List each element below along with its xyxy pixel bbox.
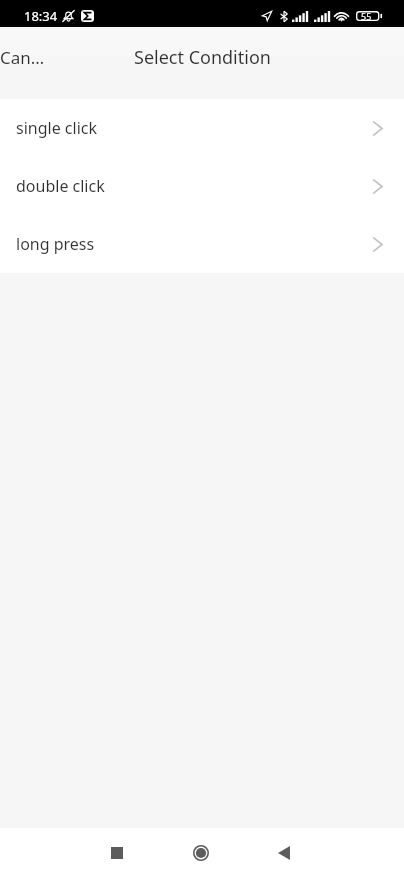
button[interactable]: Home <box>177 829 225 877</box>
staticText: 18:34 <box>24 7 58 25</box>
staticText: 55 <box>361 10 372 20</box>
staticText: single click <box>16 117 97 139</box>
staticText: Can… <box>0 46 45 69</box>
button[interactable]: Can… <box>0 35 56 79</box>
button[interactable]: Recents <box>93 829 141 877</box>
staticText: long press <box>16 233 95 255</box>
staticText: Select Condition <box>134 45 271 70</box>
button[interactable]: double click <box>0 157 404 215</box>
button[interactable]: Back <box>260 829 308 877</box>
button[interactable]: long press <box>0 215 404 273</box>
button[interactable]: single click <box>0 99 404 157</box>
staticText: double click <box>16 175 105 197</box>
